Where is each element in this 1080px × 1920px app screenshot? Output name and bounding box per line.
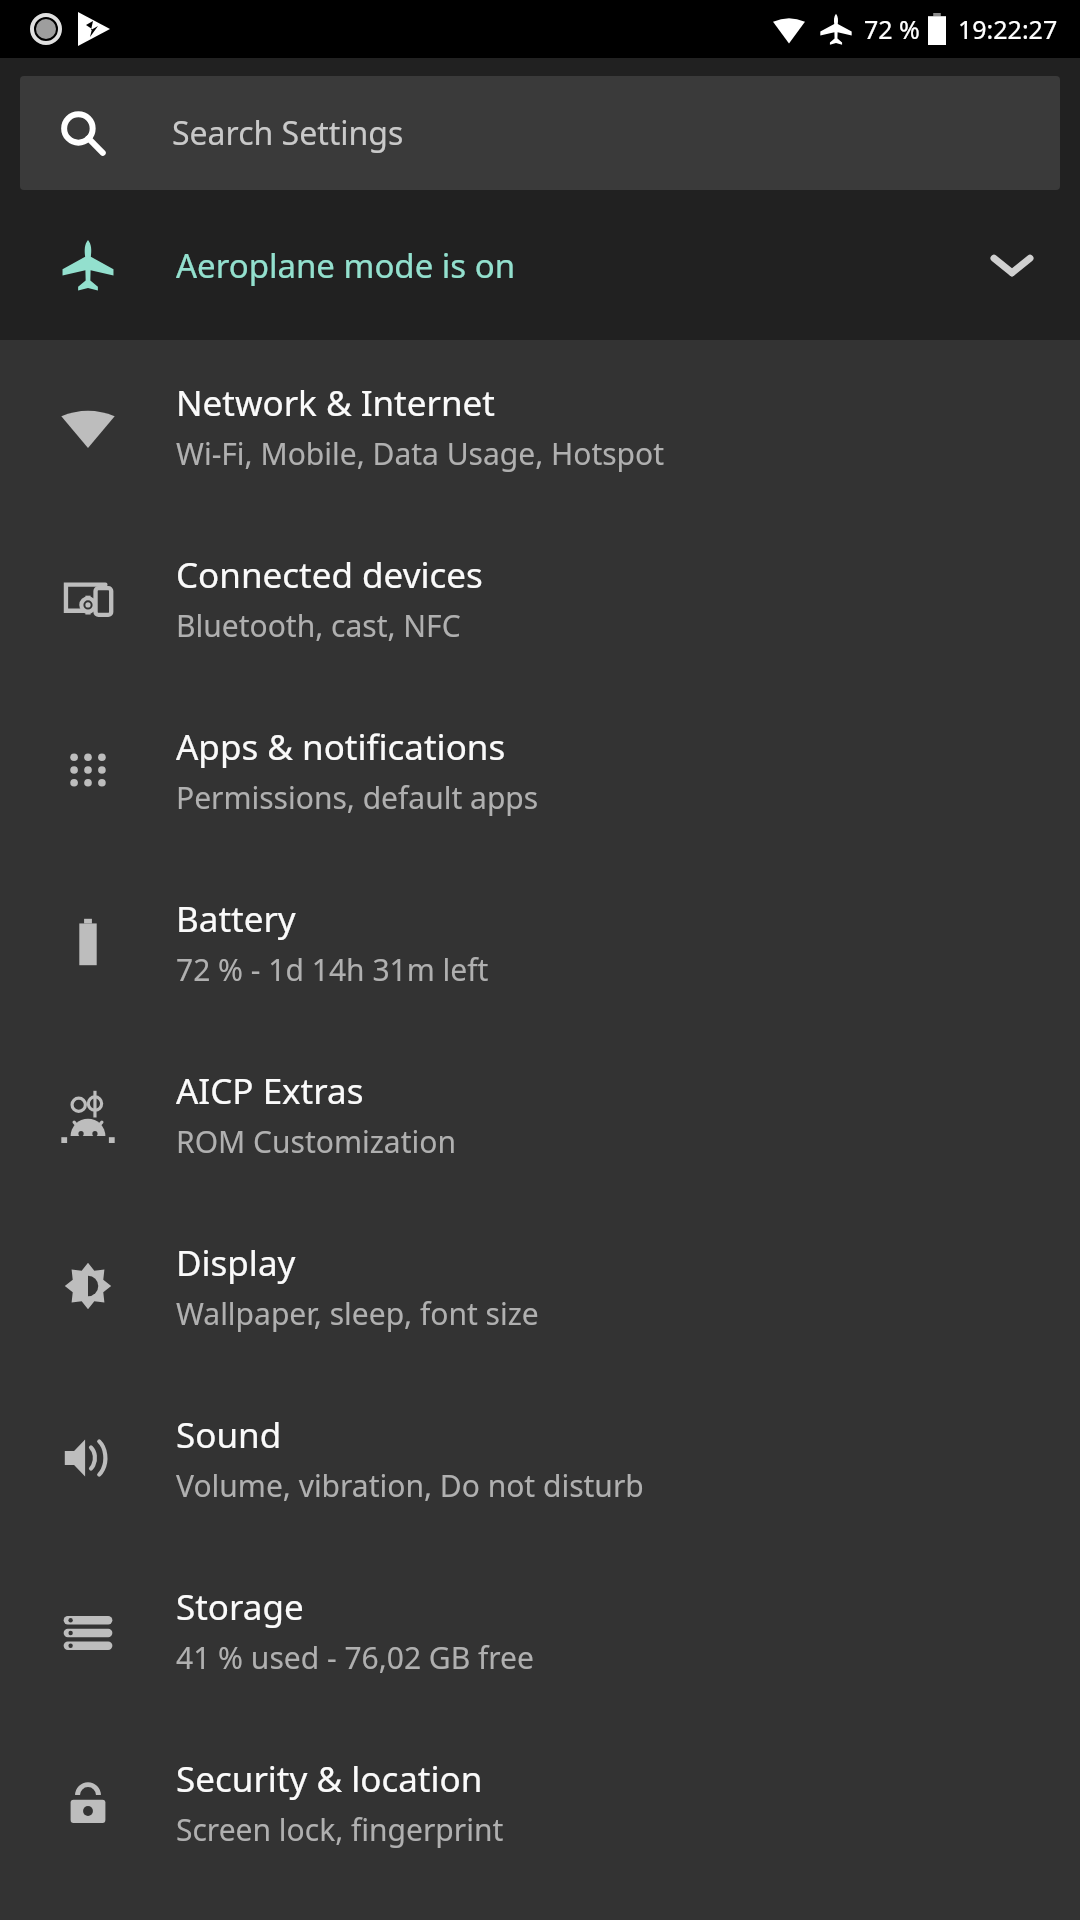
staticText: Wi-Fi, Mobile, Data Usage, Hotspot (176, 433, 665, 474)
staticText: Wallpaper, sleep, font size (176, 1293, 539, 1334)
staticText: Search Settings (172, 111, 404, 155)
button[interactable]: Battery (0, 856, 1080, 1028)
staticText: 72 % - 1d 14h 31m left (176, 949, 489, 990)
staticText: Bluetooth, cast, NFC (176, 605, 461, 646)
staticText: Volume, vibration, Do not disturb (176, 1465, 644, 1506)
staticText: 72 % (864, 12, 920, 46)
button[interactable]: Security & location (0, 1716, 1080, 1888)
staticText: AICP Extras (176, 1067, 364, 1115)
staticText: Network & Internet (176, 379, 495, 427)
button[interactable]: Aeroplane mode is on (0, 190, 1080, 340)
button[interactable]: Storage (0, 1544, 1080, 1716)
staticText: Storage (176, 1583, 304, 1631)
staticText: ROM Customization (176, 1121, 456, 1162)
button[interactable]: Display (0, 1200, 1080, 1372)
staticText: Battery (176, 895, 296, 943)
button[interactable]: Apps & notifications (0, 684, 1080, 856)
staticText: Apps & notifications (176, 723, 506, 771)
staticText: Sound (176, 1411, 282, 1459)
other: Search (60, 110, 106, 156)
staticText: Display (176, 1239, 296, 1287)
staticText: Security & location (176, 1755, 483, 1803)
button[interactable]: Network & Internet (0, 340, 1080, 512)
staticText: Aeroplane mode is on (176, 243, 516, 288)
staticText: 19:22:27 (958, 12, 1058, 46)
button[interactable]: Search (20, 76, 1060, 190)
button[interactable]: Sound (0, 1372, 1080, 1544)
button[interactable]: Connected devices (0, 512, 1080, 684)
staticText: Permissions, default apps (176, 777, 539, 818)
staticText: Screen lock, fingerprint (176, 1809, 504, 1850)
button[interactable]: Expand (984, 237, 1040, 293)
button[interactable]: AICP Extras (0, 1028, 1080, 1200)
staticText: Connected devices (176, 551, 483, 599)
staticText: 41 % used - 76,02 GB free (176, 1637, 534, 1678)
